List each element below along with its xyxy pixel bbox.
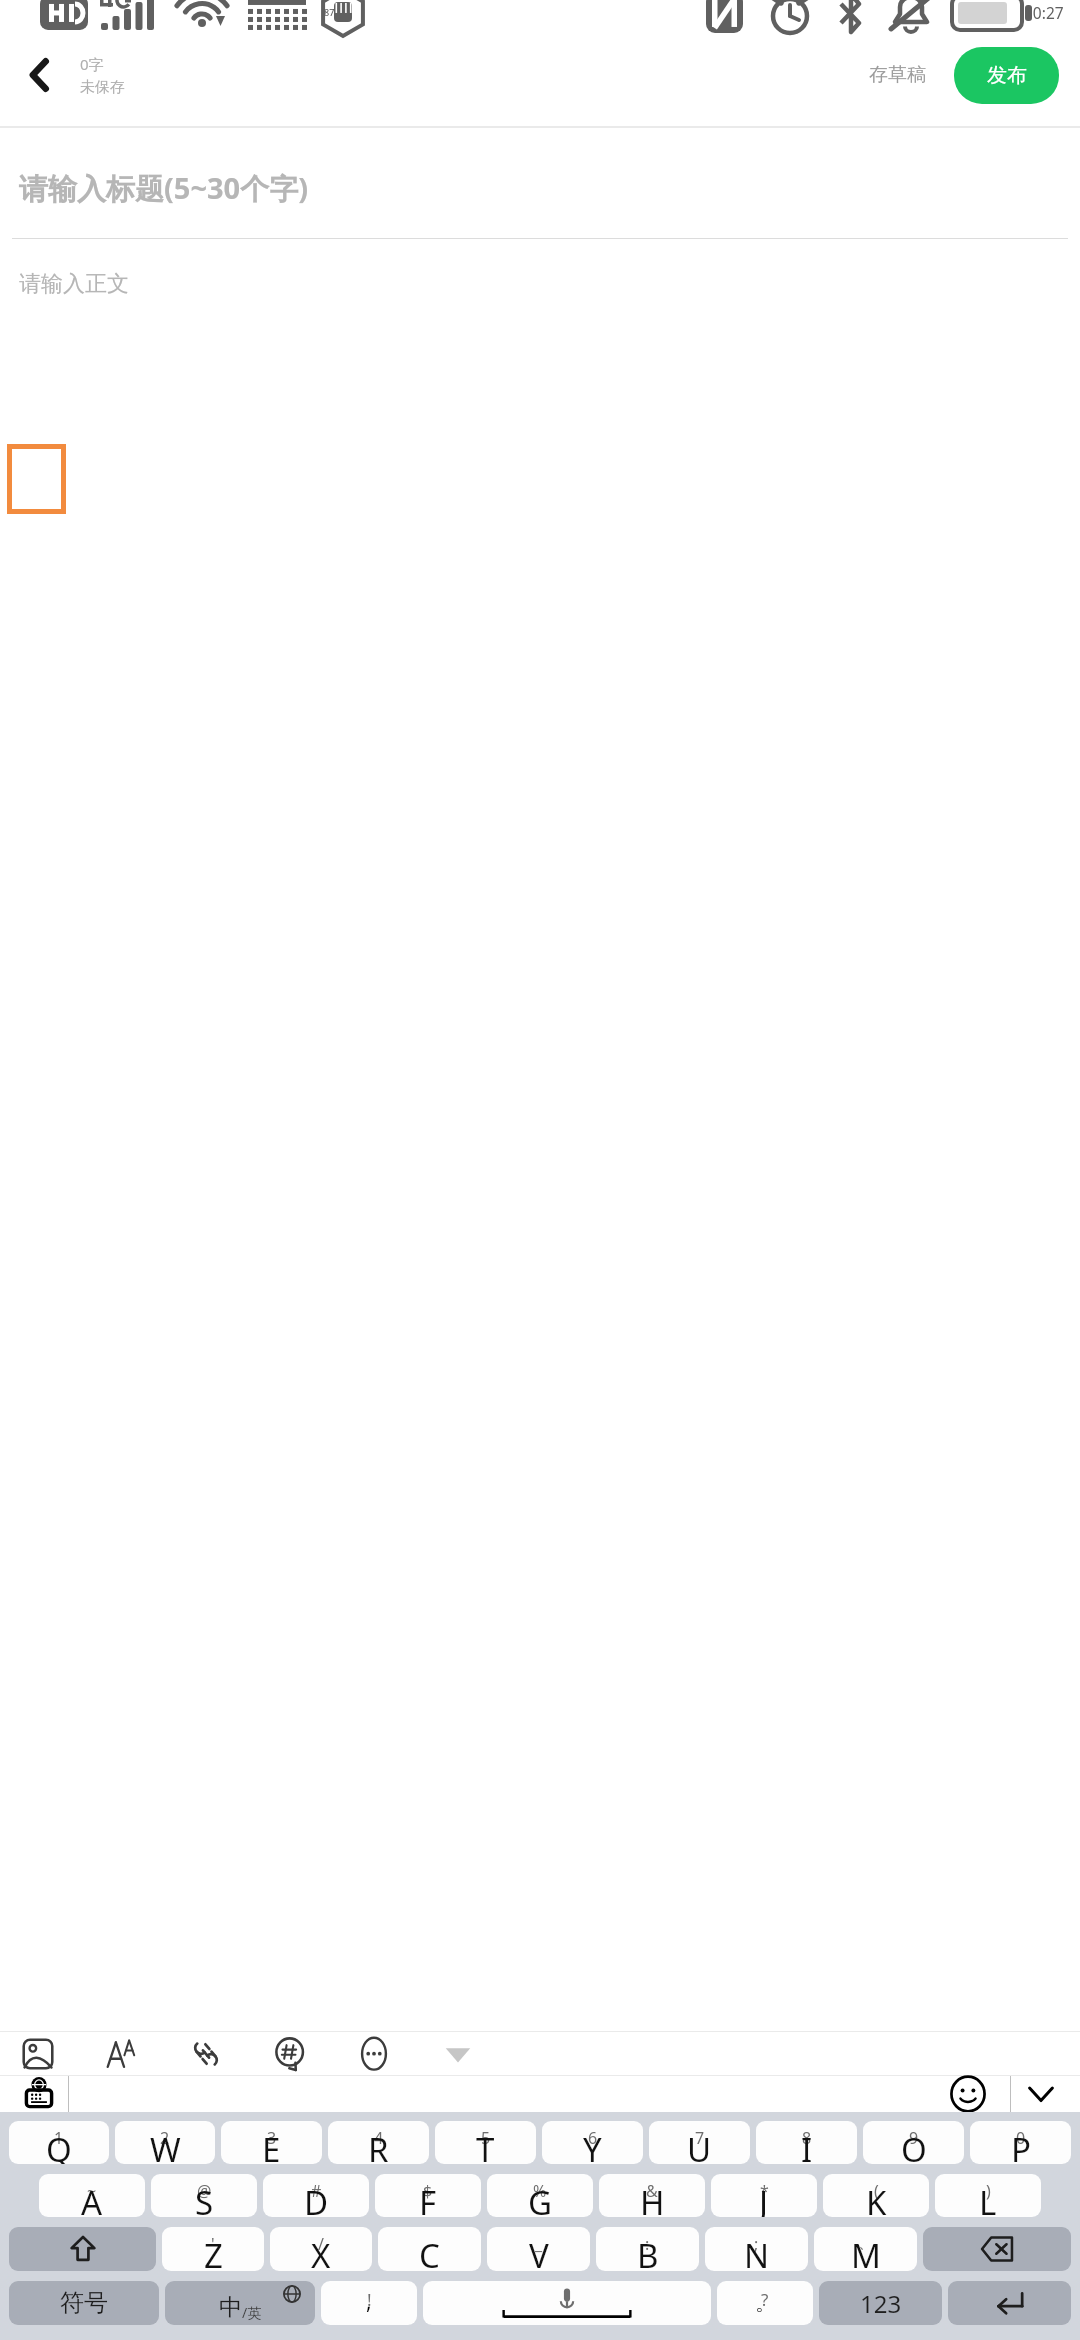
staticText: L	[979, 2180, 997, 2217]
button[interactable]: Emoji	[943, 2076, 995, 2112]
staticText: 、	[858, 2233, 874, 2253]
button[interactable]: *	[711, 2174, 817, 2217]
staticText: 2	[160, 2127, 170, 2149]
button[interactable]: 5	[435, 2121, 536, 2164]
button[interactable]: :	[596, 2227, 699, 2271]
button[interactable]: Chinese English toggle	[165, 2281, 315, 2325]
staticText: W	[150, 2127, 181, 2164]
staticText: 请输入正文	[19, 270, 129, 298]
button[interactable]: Enter	[948, 2281, 1071, 2325]
button[interactable]: 3	[221, 2121, 322, 2164]
button[interactable]: Hide keyboard	[1016, 2076, 1066, 2112]
staticText: 7	[695, 2127, 705, 2149]
staticText: N	[744, 2233, 770, 2271]
staticText: S	[195, 2180, 214, 2217]
button[interactable]: _	[487, 2227, 590, 2271]
button[interactable]: Shift	[9, 2227, 156, 2271]
staticText: #	[311, 2180, 322, 2202]
button[interactable]: Topic tag	[268, 2032, 312, 2076]
staticText: 1	[54, 2127, 64, 2149]
button[interactable]: (	[823, 2174, 929, 2217]
staticText: *	[760, 2180, 769, 2202]
button[interactable]: 符号	[9, 2281, 159, 2325]
button[interactable]: Insert link	[184, 2032, 228, 2076]
button[interactable]: /	[270, 2227, 372, 2271]
button[interactable]: Space	[423, 2281, 711, 2325]
staticText: 6	[588, 2127, 598, 2149]
button[interactable]: @	[151, 2174, 257, 2217]
button[interactable]: -	[378, 2227, 481, 2271]
staticText: '	[211, 2233, 215, 2255]
button[interactable]: )	[935, 2174, 1041, 2217]
button[interactable]	[0, 298, 1080, 2031]
staticText: ~	[87, 2180, 97, 2202]
staticText: 符号	[60, 2288, 108, 2318]
button[interactable]: 4	[328, 2121, 429, 2164]
staticText: F	[419, 2180, 437, 2217]
staticText: 123	[860, 2287, 902, 2320]
button[interactable]: 、	[814, 2227, 917, 2271]
button[interactable]: Back	[0, 24, 80, 126]
staticText: R	[368, 2127, 389, 2164]
staticText: !	[367, 2288, 372, 2311]
staticText: Y	[583, 2127, 602, 2164]
button[interactable]: #	[263, 2174, 369, 2217]
staticText: A	[81, 2180, 103, 2217]
button[interactable]: 7	[649, 2121, 750, 2164]
button[interactable]: $	[375, 2174, 481, 2217]
staticText: 87	[324, 6, 335, 18]
staticText: 10:27	[1024, 2, 1064, 23]
button[interactable]: Collapse toolbar	[436, 2032, 480, 2076]
staticText: K	[866, 2180, 887, 2217]
staticText: -	[427, 2233, 433, 2255]
staticText: D	[304, 2180, 329, 2217]
button[interactable]: &	[599, 2174, 705, 2217]
staticText: G	[528, 2180, 553, 2217]
button[interactable]: ;	[705, 2227, 808, 2271]
staticText: C	[419, 2233, 440, 2271]
button[interactable]: ?	[717, 2281, 813, 2325]
staticText: Q	[46, 2127, 72, 2164]
button[interactable]: 1	[9, 2121, 109, 2164]
button[interactable]: 8	[756, 2121, 857, 2164]
button[interactable]: 请输入正文	[19, 270, 1061, 298]
button[interactable]: Insert image	[16, 2032, 60, 2076]
button[interactable]: 存草稿	[857, 51, 938, 99]
staticText: H	[640, 2180, 665, 2217]
button[interactable]: Backspace	[923, 2227, 1071, 2271]
staticText: O	[901, 2127, 927, 2164]
staticText: $	[423, 2180, 433, 2202]
staticText: P	[1011, 2127, 1031, 2164]
button[interactable]: 0	[970, 2121, 1071, 2164]
staticText: 9	[909, 2127, 919, 2149]
staticText: 5	[481, 2127, 491, 2149]
button[interactable]: 6	[542, 2121, 643, 2164]
button[interactable]: !	[321, 2281, 417, 2325]
staticText: Z	[204, 2233, 223, 2271]
staticText: 0	[1016, 2127, 1026, 2149]
button[interactable]: 123	[819, 2281, 942, 2325]
staticText: U	[687, 2127, 712, 2164]
button[interactable]: 0字	[80, 24, 857, 126]
button[interactable]: More options	[352, 2032, 396, 2076]
staticText: V	[529, 2233, 549, 2271]
staticText: 发布	[987, 63, 1027, 88]
staticText: 存草稿	[869, 63, 926, 87]
staticText: T	[476, 2127, 495, 2164]
staticText: :	[645, 2233, 650, 2255]
staticText: 。	[755, 2290, 776, 2316]
button[interactable]: %	[487, 2174, 593, 2217]
button[interactable]: ~	[39, 2174, 145, 2217]
button[interactable]: 发布	[954, 47, 1059, 104]
staticText: %	[533, 2180, 547, 2202]
button[interactable]: '	[162, 2227, 264, 2271]
staticText: M	[851, 2233, 881, 2271]
staticText: X	[311, 2233, 331, 2271]
button[interactable]: Text style	[100, 2032, 144, 2076]
button[interactable]: 2	[115, 2121, 215, 2164]
button[interactable]: 请输入标题(5~30个字)	[19, 168, 1061, 208]
button[interactable]: Switch input language	[14, 2076, 64, 2112]
staticText: )	[986, 2180, 991, 2202]
button[interactable]: 9	[863, 2121, 964, 2164]
staticText: I	[801, 2127, 813, 2164]
